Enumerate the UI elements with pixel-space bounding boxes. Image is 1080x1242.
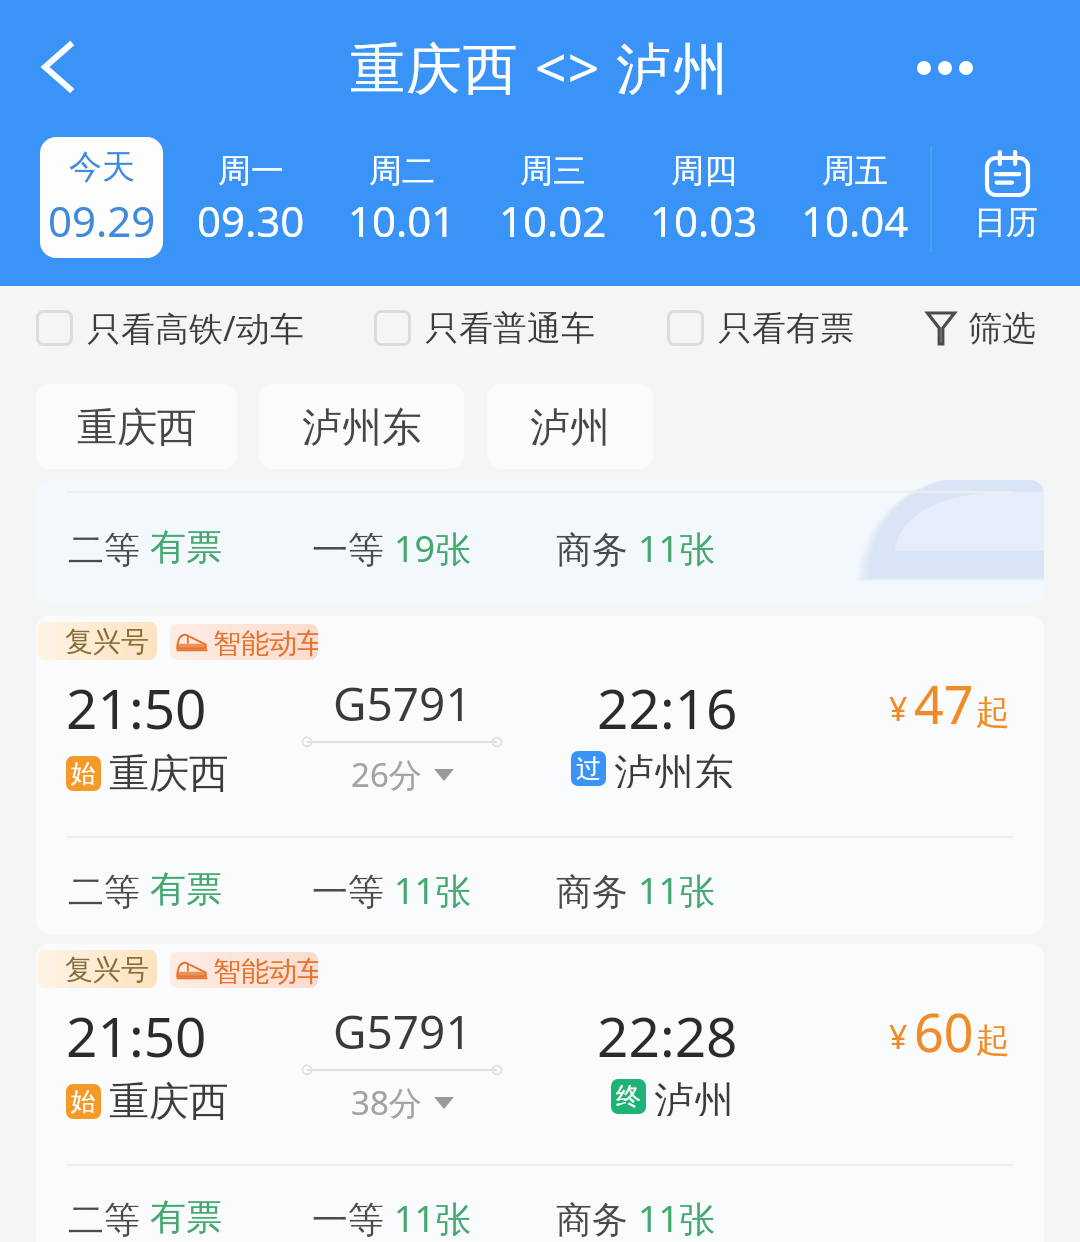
- staticText: 10.01: [348, 192, 456, 249]
- staticText: 二等: [68, 866, 150, 910]
- staticText: 商务: [556, 1194, 638, 1238]
- button[interactable]: Back: [22, 26, 94, 108]
- button[interactable]: 周一: [179, 140, 323, 258]
- staticText: 22:28: [597, 998, 738, 1073]
- staticText: 重庆西: [77, 402, 197, 452]
- button[interactable]: 只看高铁/动车: [32, 300, 304, 356]
- staticText: 只看高铁/动车: [87, 305, 304, 351]
- button[interactable]: 泸州: [487, 384, 653, 469]
- staticText: 38分: [351, 1080, 422, 1125]
- staticText: 一等: [312, 866, 394, 910]
- staticText: 11张: [638, 524, 716, 568]
- staticText: 终: [616, 1081, 641, 1112]
- staticText: 21:50: [66, 998, 207, 1073]
- staticText: 周三: [520, 150, 586, 192]
- staticText: 始: [71, 1086, 96, 1117]
- staticText: 智能动车: [213, 954, 318, 988]
- staticText: 一等: [312, 1194, 394, 1238]
- staticText: 二等: [68, 1194, 150, 1238]
- staticText: 47: [914, 668, 974, 739]
- staticText: 09.30: [197, 192, 305, 249]
- staticText: 周一: [218, 150, 284, 192]
- staticText: 10.04: [801, 192, 909, 249]
- staticText: 智能动车: [213, 626, 318, 660]
- staticText: 周五: [822, 150, 888, 192]
- staticText: 09.29: [48, 192, 156, 249]
- staticText: 周四: [671, 150, 737, 192]
- staticText: 泸州东: [614, 748, 734, 788]
- staticText: 商务: [556, 524, 638, 568]
- staticText: 11张: [394, 1194, 472, 1238]
- staticText: 有票: [150, 524, 222, 568]
- staticText: 复兴号: [65, 952, 149, 987]
- staticText: ¥: [889, 1015, 908, 1059]
- staticText: 只看有票: [718, 307, 854, 350]
- button[interactable]: 周四: [632, 140, 776, 258]
- staticText: 重庆西 <> 泸州: [350, 29, 730, 104]
- button[interactable]: 今天: [40, 137, 163, 258]
- button[interactable]: Calendar: [943, 142, 1071, 260]
- staticText: 泸州: [530, 402, 610, 452]
- staticText: 11张: [638, 866, 716, 910]
- button[interactable]: 周三: [481, 140, 625, 258]
- button[interactable]: 筛选: [926, 300, 1036, 356]
- staticText: 始: [71, 758, 96, 789]
- staticText: G5791: [333, 672, 472, 735]
- staticText: 商务: [556, 866, 638, 910]
- staticText: 过: [576, 753, 601, 784]
- staticText: 有票: [150, 866, 222, 910]
- staticText: 有票: [150, 1194, 222, 1238]
- staticText: 泸州: [654, 1076, 734, 1116]
- button[interactable]: 泸州东: [259, 384, 464, 469]
- button[interactable]: 只看有票: [663, 300, 854, 356]
- staticText: 10.03: [650, 192, 758, 249]
- button[interactable]: 只看普通车: [370, 300, 595, 356]
- staticText: 重庆西: [109, 1076, 229, 1126]
- staticText: 筛选: [968, 307, 1036, 350]
- button[interactable]: More options: [902, 36, 992, 100]
- staticText: 26分: [351, 752, 422, 797]
- staticText: 11张: [394, 866, 472, 910]
- staticText: 只看普通车: [425, 307, 595, 350]
- staticText: 今天: [69, 146, 135, 188]
- staticText: 21:50: [66, 670, 207, 745]
- staticText: 11张: [638, 1194, 716, 1238]
- button[interactable]: 复兴号: [36, 944, 1044, 1242]
- staticText: 周二: [369, 150, 435, 192]
- staticText: 日历: [974, 202, 1038, 242]
- button[interactable]: 周五: [783, 140, 927, 258]
- staticText: 10.02: [499, 192, 607, 249]
- staticText: 泸州东: [302, 402, 422, 452]
- staticText: 一等: [312, 524, 394, 568]
- staticText: 起: [976, 691, 1010, 734]
- staticText: 复兴号: [65, 624, 149, 659]
- button[interactable]: 重庆西: [36, 384, 237, 469]
- staticText: G5791: [333, 1000, 472, 1063]
- staticText: 22:16: [597, 670, 738, 745]
- staticText: 重庆西: [109, 748, 229, 798]
- staticText: 二等: [68, 524, 150, 568]
- button[interactable]: 周二: [330, 140, 474, 258]
- staticText: ¥: [889, 687, 908, 731]
- staticText: 19张: [394, 524, 472, 568]
- staticText: 起: [976, 1019, 1010, 1062]
- button[interactable]: 复兴号: [36, 616, 1044, 934]
- staticText: 60: [914, 996, 974, 1067]
- button[interactable]: 二等: [36, 480, 1044, 602]
